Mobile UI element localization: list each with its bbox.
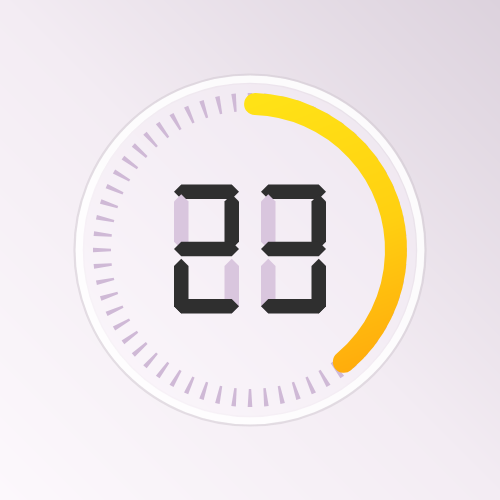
- button[interactable]: Countdown timer, 23 remaining: [0, 0, 500, 500]
